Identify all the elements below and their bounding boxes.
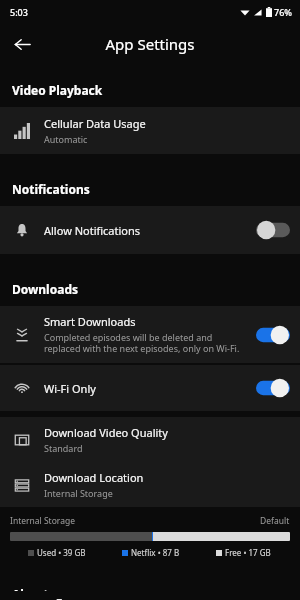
- staticText: Downloads: [12, 281, 78, 297]
- staticText: Smart Downloads: [44, 314, 136, 329]
- button[interactable]: Back: [6, 28, 38, 60]
- staticText: Cellular Data Usage: [44, 116, 146, 131]
- staticText: Download Location: [44, 470, 144, 485]
- staticText: Allow Notifications: [44, 223, 141, 238]
- staticText: Default: [260, 515, 290, 527]
- button[interactable]: Allow Notifications: [0, 206, 300, 254]
- staticText: Internal Storage: [44, 487, 113, 499]
- staticText: Automatic: [44, 133, 88, 145]
- staticText: Internal Storage: [10, 515, 75, 527]
- staticText: 5:03: [10, 6, 28, 18]
- staticText: About: [12, 586, 49, 591]
- staticText: 76%: [274, 6, 292, 18]
- staticText: Completed episodes will be deleted and r…: [44, 331, 248, 355]
- button[interactable]: Cellular Data Usage: [0, 107, 300, 154]
- button[interactable]: Toggle on: [256, 325, 290, 345]
- staticText: Free • 17 GB: [225, 547, 271, 558]
- staticText: App Settings: [105, 34, 195, 54]
- staticText: Video Playback: [12, 82, 103, 98]
- staticText: Standard: [44, 442, 83, 454]
- button[interactable]: Download Location: [0, 462, 300, 507]
- staticText: Download Video Quality: [44, 425, 168, 440]
- staticText: Notifications: [12, 181, 90, 197]
- button[interactable]: Download Video Quality: [0, 417, 300, 462]
- button[interactable]: Toggle off: [256, 220, 290, 240]
- button[interactable]: Toggle on: [256, 378, 290, 398]
- staticText: Wi-Fi Only: [44, 381, 96, 396]
- button[interactable]: Wi-Fi Only: [0, 365, 300, 411]
- staticText: Used • 39 GB: [37, 547, 86, 558]
- staticText: Netflix • 87 B: [131, 547, 180, 558]
- button[interactable]: Smart Downloads: [0, 306, 300, 363]
